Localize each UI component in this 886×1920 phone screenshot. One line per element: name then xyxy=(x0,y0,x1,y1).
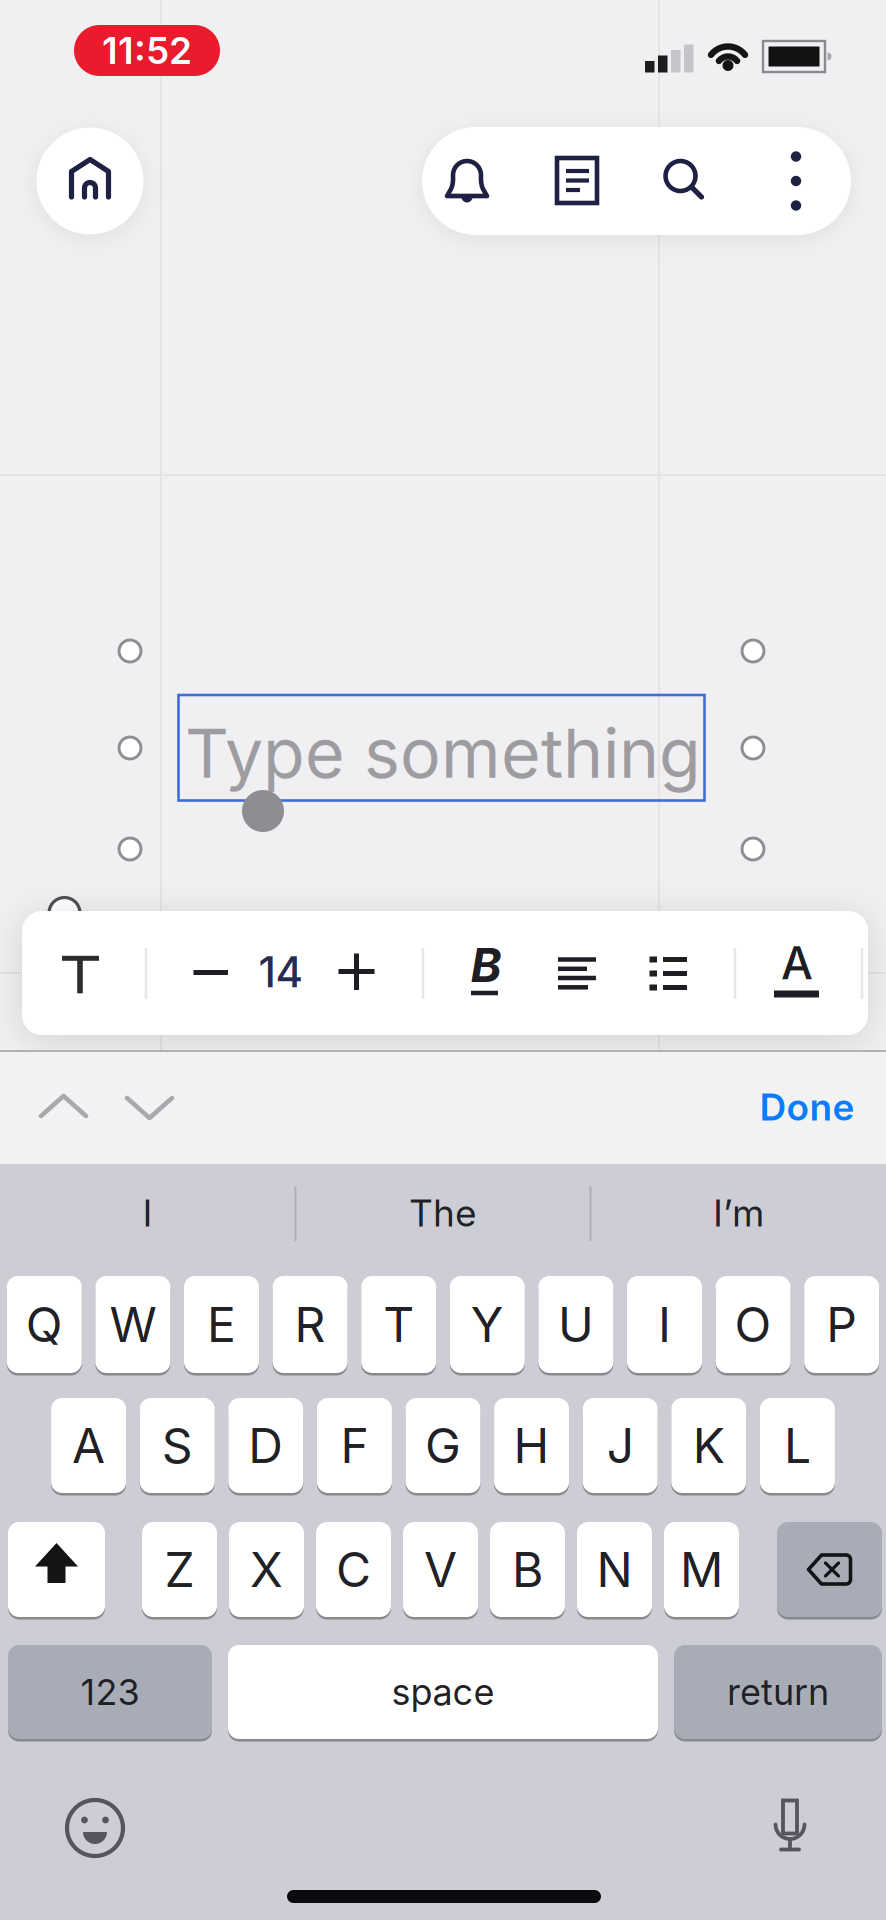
staticText: A xyxy=(72,1417,105,1474)
staticText: K xyxy=(693,1417,725,1474)
staticText: X xyxy=(250,1541,283,1598)
button[interactable]: Text alignment xyxy=(532,911,622,1035)
button[interactable]: D xyxy=(228,1398,303,1493)
button[interactable]: M xyxy=(664,1522,739,1617)
staticText: A xyxy=(781,936,813,990)
button[interactable]: L xyxy=(760,1398,835,1493)
button[interactable]: W xyxy=(95,1276,170,1373)
button[interactable]: Font size xyxy=(258,947,303,997)
staticText: Z xyxy=(164,1541,194,1598)
button[interactable]: S xyxy=(140,1398,215,1493)
button[interactable]: Search xyxy=(640,131,730,231)
staticText: F xyxy=(340,1417,368,1474)
staticText: E xyxy=(207,1296,236,1353)
staticText: T xyxy=(383,1296,414,1353)
button[interactable]: Next field xyxy=(114,1078,184,1138)
button[interactable]: 123 xyxy=(8,1645,212,1739)
button[interactable]: P xyxy=(804,1276,879,1373)
button[interactable]: Z xyxy=(142,1522,217,1617)
button[interactable]: Shift xyxy=(8,1522,105,1617)
staticText: B xyxy=(512,1541,543,1598)
button[interactable]: Text color xyxy=(752,911,842,1035)
button[interactable]: V xyxy=(403,1522,478,1617)
staticText: space xyxy=(391,1671,494,1713)
button[interactable]: Bold xyxy=(441,911,531,1035)
button[interactable]: Previous field xyxy=(28,1076,98,1136)
button[interactable]: More options xyxy=(761,131,831,231)
button[interactable]: Q xyxy=(7,1276,82,1373)
button[interactable]: I xyxy=(627,1276,702,1373)
button[interactable]: I’m xyxy=(598,1175,878,1251)
button[interactable]: O xyxy=(716,1276,791,1373)
staticText: J xyxy=(607,1417,634,1474)
button[interactable]: List xyxy=(623,911,713,1035)
staticText: L xyxy=(784,1417,811,1474)
staticText: V xyxy=(424,1541,457,1598)
staticText: return xyxy=(727,1671,829,1713)
staticText: B xyxy=(470,937,501,993)
button[interactable]: J xyxy=(583,1398,658,1493)
staticText: W xyxy=(109,1296,156,1353)
button[interactable]: return xyxy=(674,1645,882,1739)
button[interactable]: G xyxy=(405,1398,480,1493)
staticText: O xyxy=(735,1296,772,1353)
button[interactable]: space xyxy=(228,1645,658,1739)
staticText: I xyxy=(658,1296,671,1353)
button[interactable]: Delete xyxy=(777,1522,882,1617)
staticText: 11:52 xyxy=(102,29,192,72)
button[interactable]: Done xyxy=(759,1085,854,1129)
button[interactable]: Stop screen recording xyxy=(74,25,220,76)
button[interactable]: F xyxy=(317,1398,392,1493)
staticText: P xyxy=(826,1296,857,1353)
staticText: M xyxy=(680,1541,723,1598)
staticText: Done xyxy=(759,1085,854,1129)
button[interactable]: Notifications xyxy=(422,131,512,231)
button[interactable]: Increase font size xyxy=(321,911,391,1035)
button[interactable]: U xyxy=(538,1276,613,1373)
button[interactable]: B xyxy=(490,1522,565,1617)
button[interactable]: Home xyxy=(36,127,143,234)
staticText: I xyxy=(143,1191,153,1235)
button[interactable]: Y xyxy=(450,1276,525,1373)
button[interactable]: C xyxy=(316,1522,391,1617)
staticText: N xyxy=(596,1541,632,1598)
button[interactable]: Dictation xyxy=(755,1785,825,1865)
button[interactable]: H xyxy=(494,1398,569,1493)
staticText: 123 xyxy=(80,1671,139,1713)
button[interactable]: A xyxy=(51,1398,126,1493)
staticText: I’m xyxy=(713,1191,764,1235)
staticText: The xyxy=(409,1191,477,1235)
staticText: R xyxy=(295,1296,326,1353)
button[interactable]: Notes xyxy=(532,131,622,231)
button[interactable]: X xyxy=(229,1522,304,1617)
staticText: 14 xyxy=(258,947,303,997)
button[interactable]: The xyxy=(303,1175,583,1251)
button[interactable]: R xyxy=(273,1276,348,1373)
staticText: Q xyxy=(26,1296,63,1353)
button[interactable]: I xyxy=(8,1175,288,1251)
button[interactable]: Decrease font size xyxy=(176,911,246,1035)
staticText: Y xyxy=(471,1296,504,1353)
button[interactable]: Emoji xyxy=(55,1788,135,1868)
button[interactable]: T xyxy=(361,1276,436,1373)
button[interactable]: Text style xyxy=(36,911,126,1035)
staticText: H xyxy=(514,1417,550,1474)
staticText: D xyxy=(248,1417,283,1474)
staticText: Type something xyxy=(185,713,701,793)
staticText: U xyxy=(558,1296,594,1353)
button[interactable]: K xyxy=(671,1398,746,1493)
button[interactable]: N xyxy=(577,1522,652,1617)
staticText: G xyxy=(425,1417,461,1474)
staticText: S xyxy=(162,1417,193,1474)
staticText: C xyxy=(336,1541,371,1598)
button[interactable]: E xyxy=(184,1276,259,1373)
